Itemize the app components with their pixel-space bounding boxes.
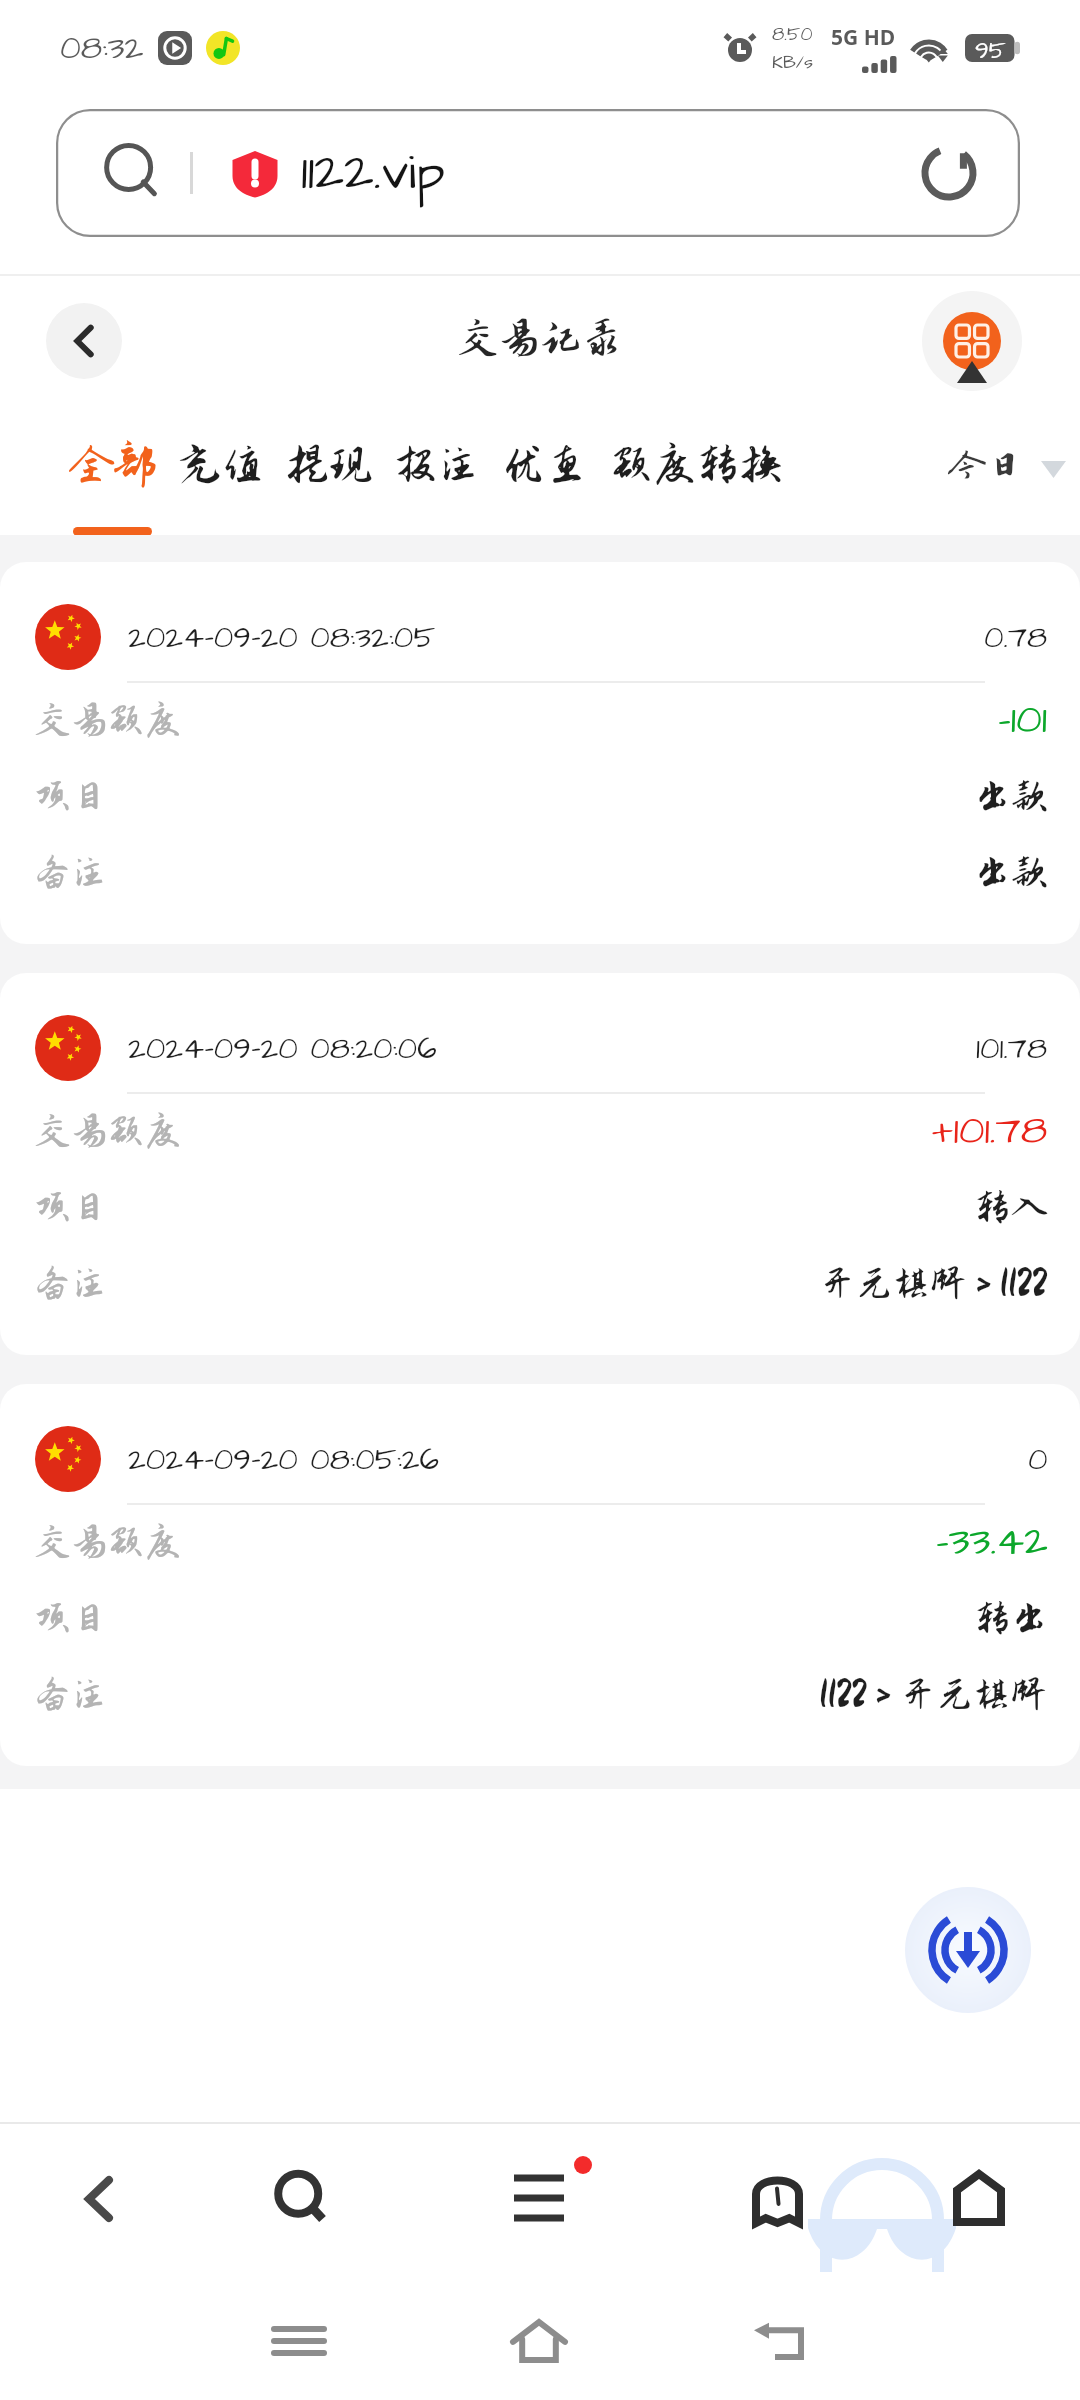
button[interactable]: 充值 — [176, 437, 267, 505]
staticText: 今日 — [948, 444, 1024, 486]
staticText: 额度转换 — [610, 441, 783, 489]
staticText: 交易额度 — [34, 1111, 182, 1152]
staticText: 交易额度 — [34, 700, 182, 741]
button[interactable]: 全部 — [68, 437, 159, 505]
staticText: 2024-09-20 08:32:05 — [128, 616, 436, 659]
staticText: 0.78 — [984, 616, 1048, 659]
staticText: 2024-09-20 08:05:26 — [128, 1438, 439, 1481]
button[interactable]: Home — [479, 2282, 599, 2400]
button[interactable]: Home — [879, 2128, 1079, 2268]
staticText: 充值 — [178, 441, 265, 489]
button[interactable]: Search — [202, 2128, 402, 2268]
staticText: 备注 — [34, 852, 108, 893]
staticText: 全部 — [70, 441, 157, 489]
staticText: 开元棋牌 > 1122 — [819, 1263, 1048, 1304]
staticText: +101.78 — [932, 1103, 1048, 1160]
staticText: 转入 — [974, 1187, 1048, 1228]
staticText: 5G HD — [831, 23, 896, 52]
staticText: 备注 — [34, 1263, 108, 1304]
button[interactable]: 优惠 — [500, 437, 591, 505]
button[interactable]: 投注 — [392, 437, 483, 505]
staticText: 提现 — [286, 441, 373, 489]
staticText: -33.42 — [936, 1514, 1048, 1571]
staticText: 8.50 — [772, 21, 813, 47]
staticText: 备注 — [34, 1674, 108, 1715]
staticText: KB/s — [772, 50, 813, 75]
staticText: -101 — [998, 692, 1048, 749]
button[interactable]: Back — [0, 2129, 199, 2269]
button[interactable]: Search — [56, 109, 1020, 237]
staticText: 项目 — [34, 776, 108, 817]
staticText: 交易记录 — [457, 316, 623, 362]
staticText: 1122 > 开元棋牌 — [819, 1674, 1048, 1715]
button[interactable]: Bookmarks — [677, 2129, 877, 2269]
staticText: 投注 — [394, 441, 481, 489]
button[interactable]: 2024-09-20 08:32:05 — [0, 562, 1080, 944]
staticText: 交易额度 — [34, 1522, 182, 1563]
staticText: 项目 — [34, 1187, 108, 1228]
staticText: 出款 — [974, 776, 1048, 817]
staticText: 1122.vip — [301, 137, 445, 209]
other: Reload — [919, 143, 979, 203]
staticText: 95 — [975, 34, 1006, 62]
other: Search — [104, 145, 160, 201]
button[interactable]: Back — [46, 303, 122, 379]
button[interactable]: Download — [905, 1887, 1031, 2013]
staticText: 0 — [1028, 1438, 1048, 1481]
button[interactable]: 今日 — [942, 440, 1072, 502]
button[interactable]: 提现 — [284, 437, 375, 505]
button[interactable]: 2024-09-20 08:05:26 — [0, 1384, 1080, 1766]
staticText: 2024-09-20 08:20:06 — [128, 1027, 437, 1070]
staticText: 08:32 — [60, 25, 144, 71]
staticText: 转出 — [974, 1598, 1048, 1639]
staticText: 项目 — [34, 1598, 108, 1639]
button[interactable]: Recents — [239, 2282, 359, 2400]
button[interactable]: Menu — [439, 2128, 639, 2268]
staticText: 出款 — [974, 852, 1048, 893]
staticText: 101.78 — [976, 1027, 1048, 1070]
button[interactable]: Apps — [943, 312, 1001, 370]
staticText: 优惠 — [502, 441, 589, 489]
button[interactable]: 额度转换 — [608, 437, 785, 505]
button[interactable]: 2024-09-20 08:20:06 — [0, 973, 1080, 1355]
button[interactable]: Back — [719, 2282, 839, 2400]
